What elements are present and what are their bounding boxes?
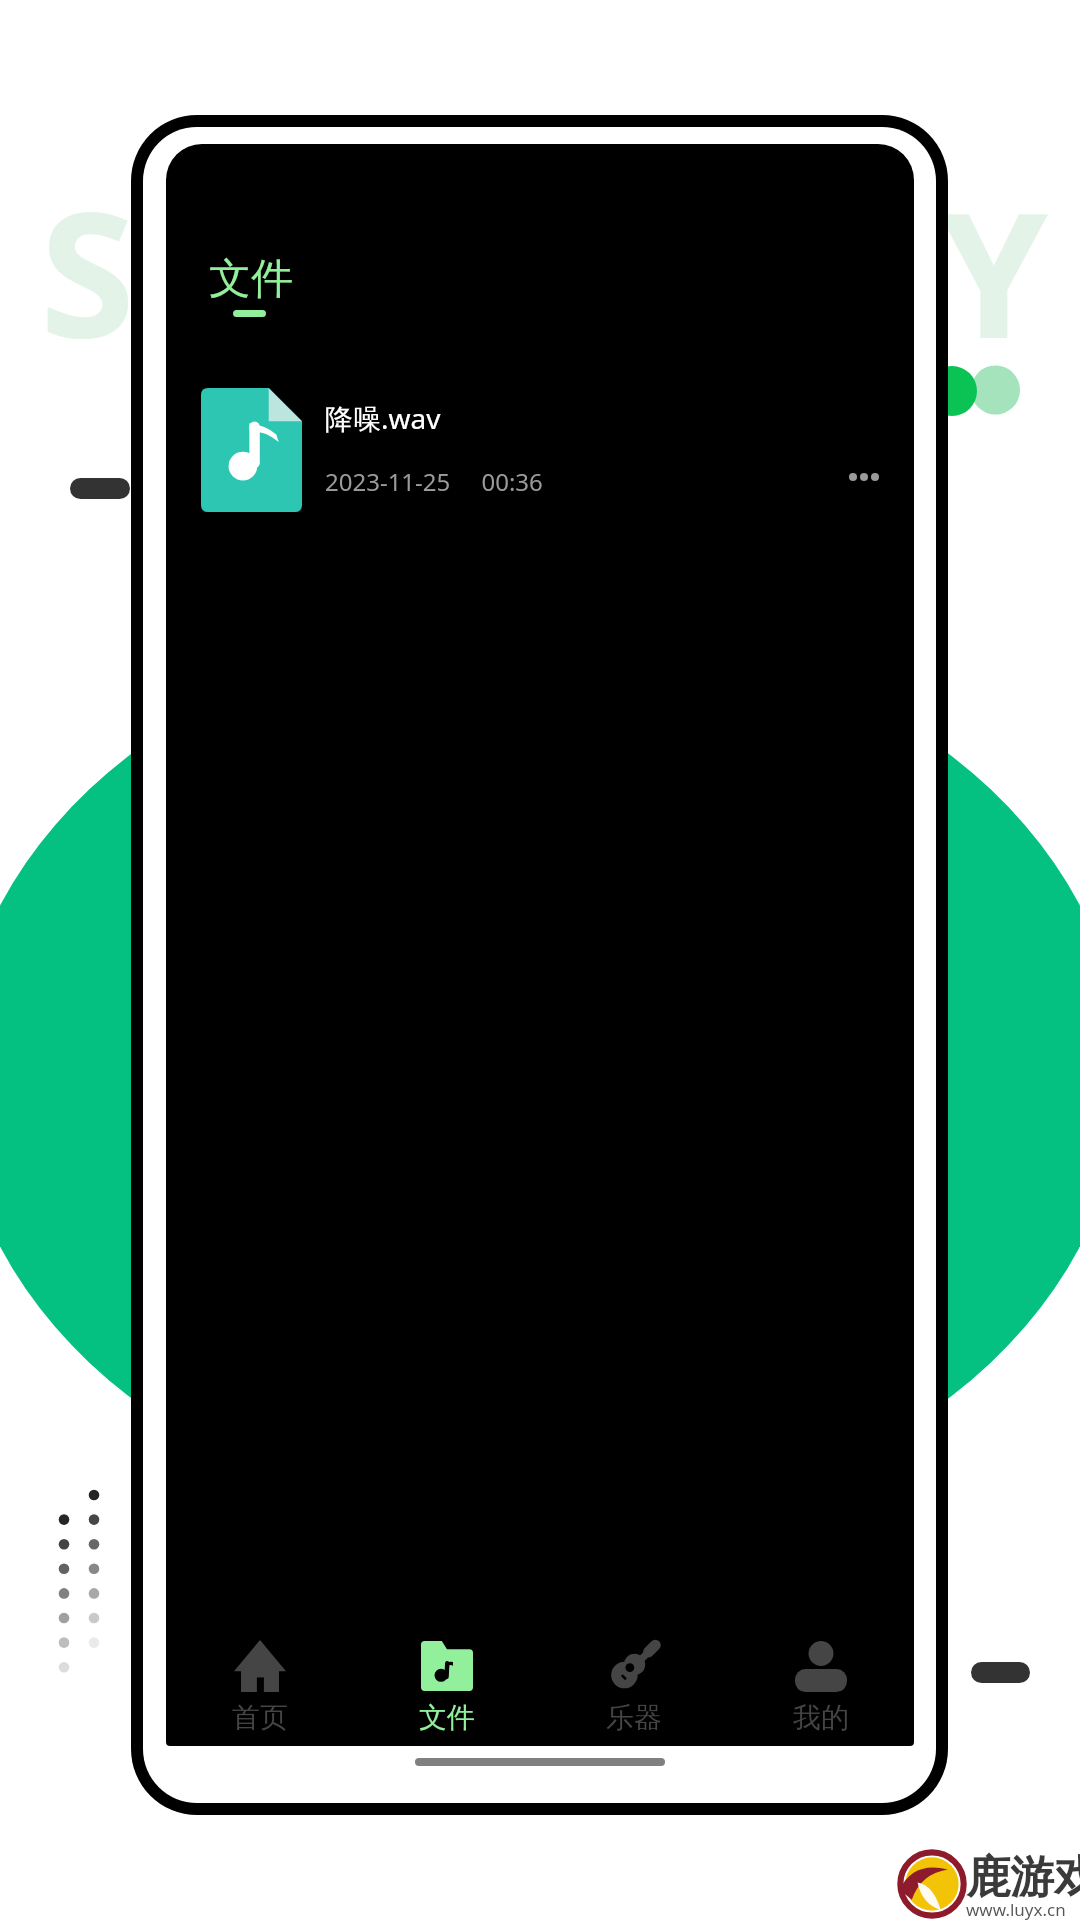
staticText: 首页 (232, 1700, 288, 1735)
staticText: 文件 (419, 1700, 475, 1735)
staticText: 2023-11-25 00:36 (325, 465, 543, 498)
staticText: 降噪.wav (325, 399, 441, 437)
staticText: S (40, 153, 135, 387)
staticText: 乐器 (606, 1700, 662, 1735)
button[interactable]: 文件 (353, 1620, 540, 1735)
staticText: 鹿游戏 (966, 1850, 1080, 1905)
button[interactable]: 首页 (166, 1620, 353, 1735)
button[interactable]: 我的 (727, 1620, 914, 1735)
staticText: Y (940, 154, 1048, 388)
staticText: 我的 (793, 1700, 849, 1735)
button[interactable]: More options (829, 442, 899, 512)
button[interactable]: 乐器 (540, 1620, 727, 1735)
button[interactable]: 降噪.wav (166, 380, 914, 520)
staticText: 文件 (209, 253, 293, 306)
staticText: www.luyx.cn (966, 1898, 1066, 1920)
